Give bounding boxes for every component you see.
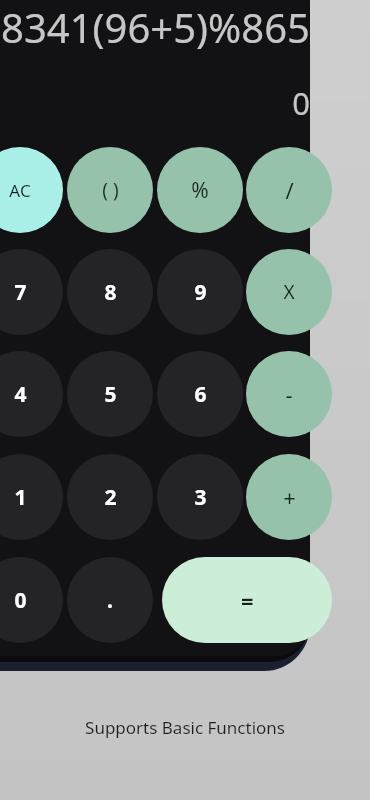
- button[interactable]: 1: [0, 454, 63, 540]
- staticText: /: [285, 175, 294, 205]
- button[interactable]: X: [246, 249, 332, 335]
- button[interactable]: 5: [67, 351, 153, 437]
- staticText: %: [191, 176, 209, 205]
- button[interactable]: 6: [157, 351, 243, 437]
- staticText: 6: [194, 380, 207, 409]
- staticText: 0: [14, 586, 27, 615]
- button[interactable]: 4: [0, 351, 63, 437]
- staticText: -: [285, 379, 293, 409]
- staticText: 1: [14, 483, 27, 512]
- staticText: Supports Basic Functions: [85, 716, 285, 739]
- button[interactable]: 9: [157, 249, 243, 335]
- staticText: 9: [194, 278, 207, 307]
- staticText: 3: [194, 483, 207, 512]
- staticText: .: [107, 586, 113, 615]
- staticText: X: [283, 279, 295, 305]
- staticText: 7: [14, 278, 27, 307]
- button[interactable]: 2: [67, 454, 153, 540]
- button[interactable]: AC: [0, 147, 63, 233]
- button[interactable]: %: [157, 147, 243, 233]
- button[interactable]: 0: [0, 557, 63, 643]
- button[interactable]: 3: [157, 454, 243, 540]
- staticText: 5: [104, 380, 117, 409]
- staticText: 2: [104, 483, 117, 512]
- staticText: AC: [9, 179, 31, 202]
- button[interactable]: 7: [0, 249, 63, 335]
- button[interactable]: ( ): [67, 147, 153, 233]
- button[interactable]: .: [67, 557, 153, 643]
- staticText: 8341(96+5)%865: [1, 0, 310, 52]
- button[interactable]: /: [246, 147, 332, 233]
- button[interactable]: =: [162, 557, 332, 643]
- button[interactable]: 8: [67, 249, 153, 335]
- staticText: 4: [14, 380, 27, 409]
- staticText: 8: [104, 278, 117, 307]
- staticText: ( ): [102, 177, 119, 203]
- staticText: 0: [292, 82, 310, 122]
- staticText: +: [283, 482, 296, 512]
- button[interactable]: +: [246, 454, 332, 540]
- button[interactable]: -: [246, 351, 332, 437]
- staticText: =: [241, 585, 254, 615]
